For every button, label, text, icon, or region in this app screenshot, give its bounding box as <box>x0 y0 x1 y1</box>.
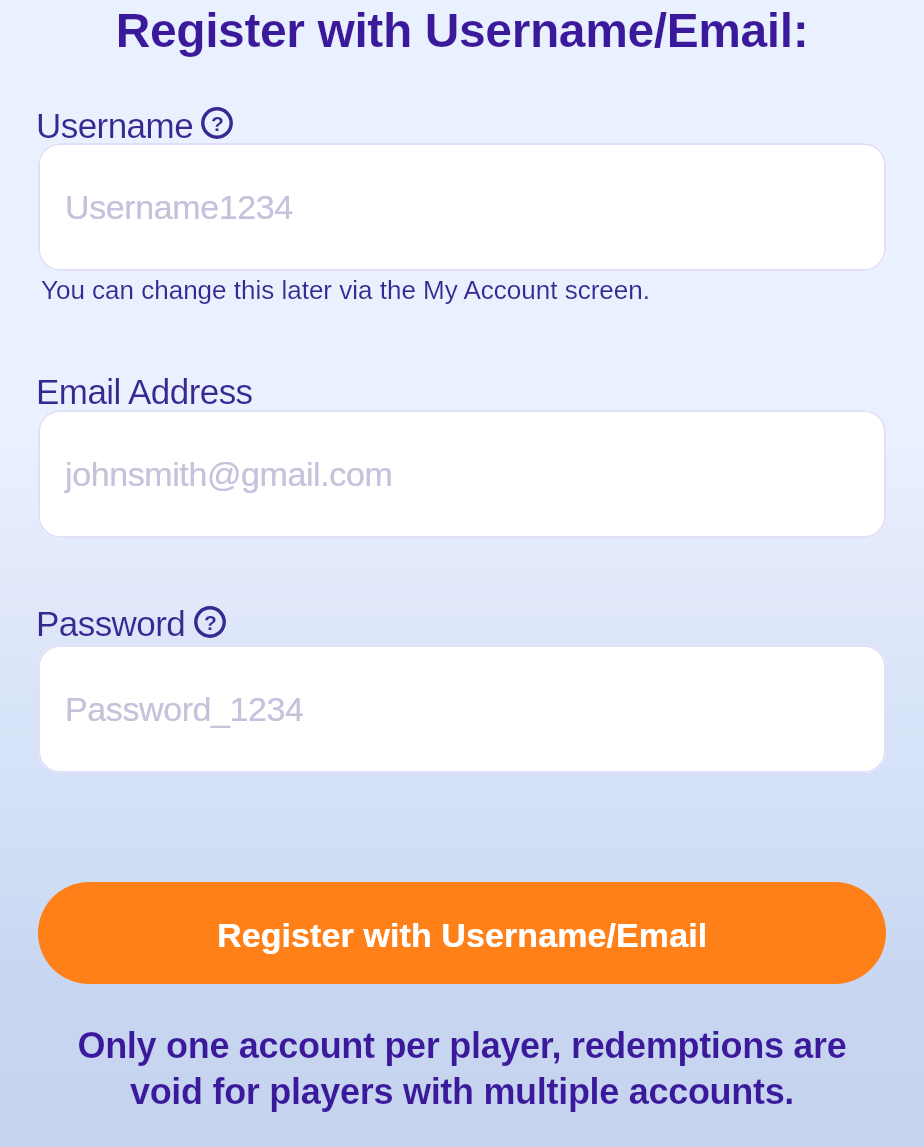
staticText: ? <box>211 112 224 135</box>
staticText: Username <box>36 106 194 145</box>
staticText: ? <box>204 611 217 634</box>
staticText: Email Address <box>36 372 253 411</box>
button[interactable]: johnsmith@gmail.com <box>38 410 886 538</box>
staticText: Only one account per player, redemptions… <box>0 1025 924 1111</box>
button[interactable]: Help about Username <box>201 107 233 139</box>
button[interactable]: Password_1234 <box>38 645 886 773</box>
staticText: Register with Username/Email: <box>0 4 924 58</box>
staticText: You can change this later via the My Acc… <box>41 275 650 304</box>
staticText: johnsmith@gmail.com <box>65 455 393 493</box>
staticText: Password <box>36 604 186 643</box>
button[interactable]: Help about Password <box>194 606 226 638</box>
staticText: Register with Username/Email <box>217 916 708 954</box>
staticText: Password_1234 <box>65 690 304 728</box>
button[interactable]: Register with Username/Email <box>38 882 886 984</box>
button[interactable]: Username1234 <box>38 143 886 271</box>
staticText: Username1234 <box>65 188 293 226</box>
